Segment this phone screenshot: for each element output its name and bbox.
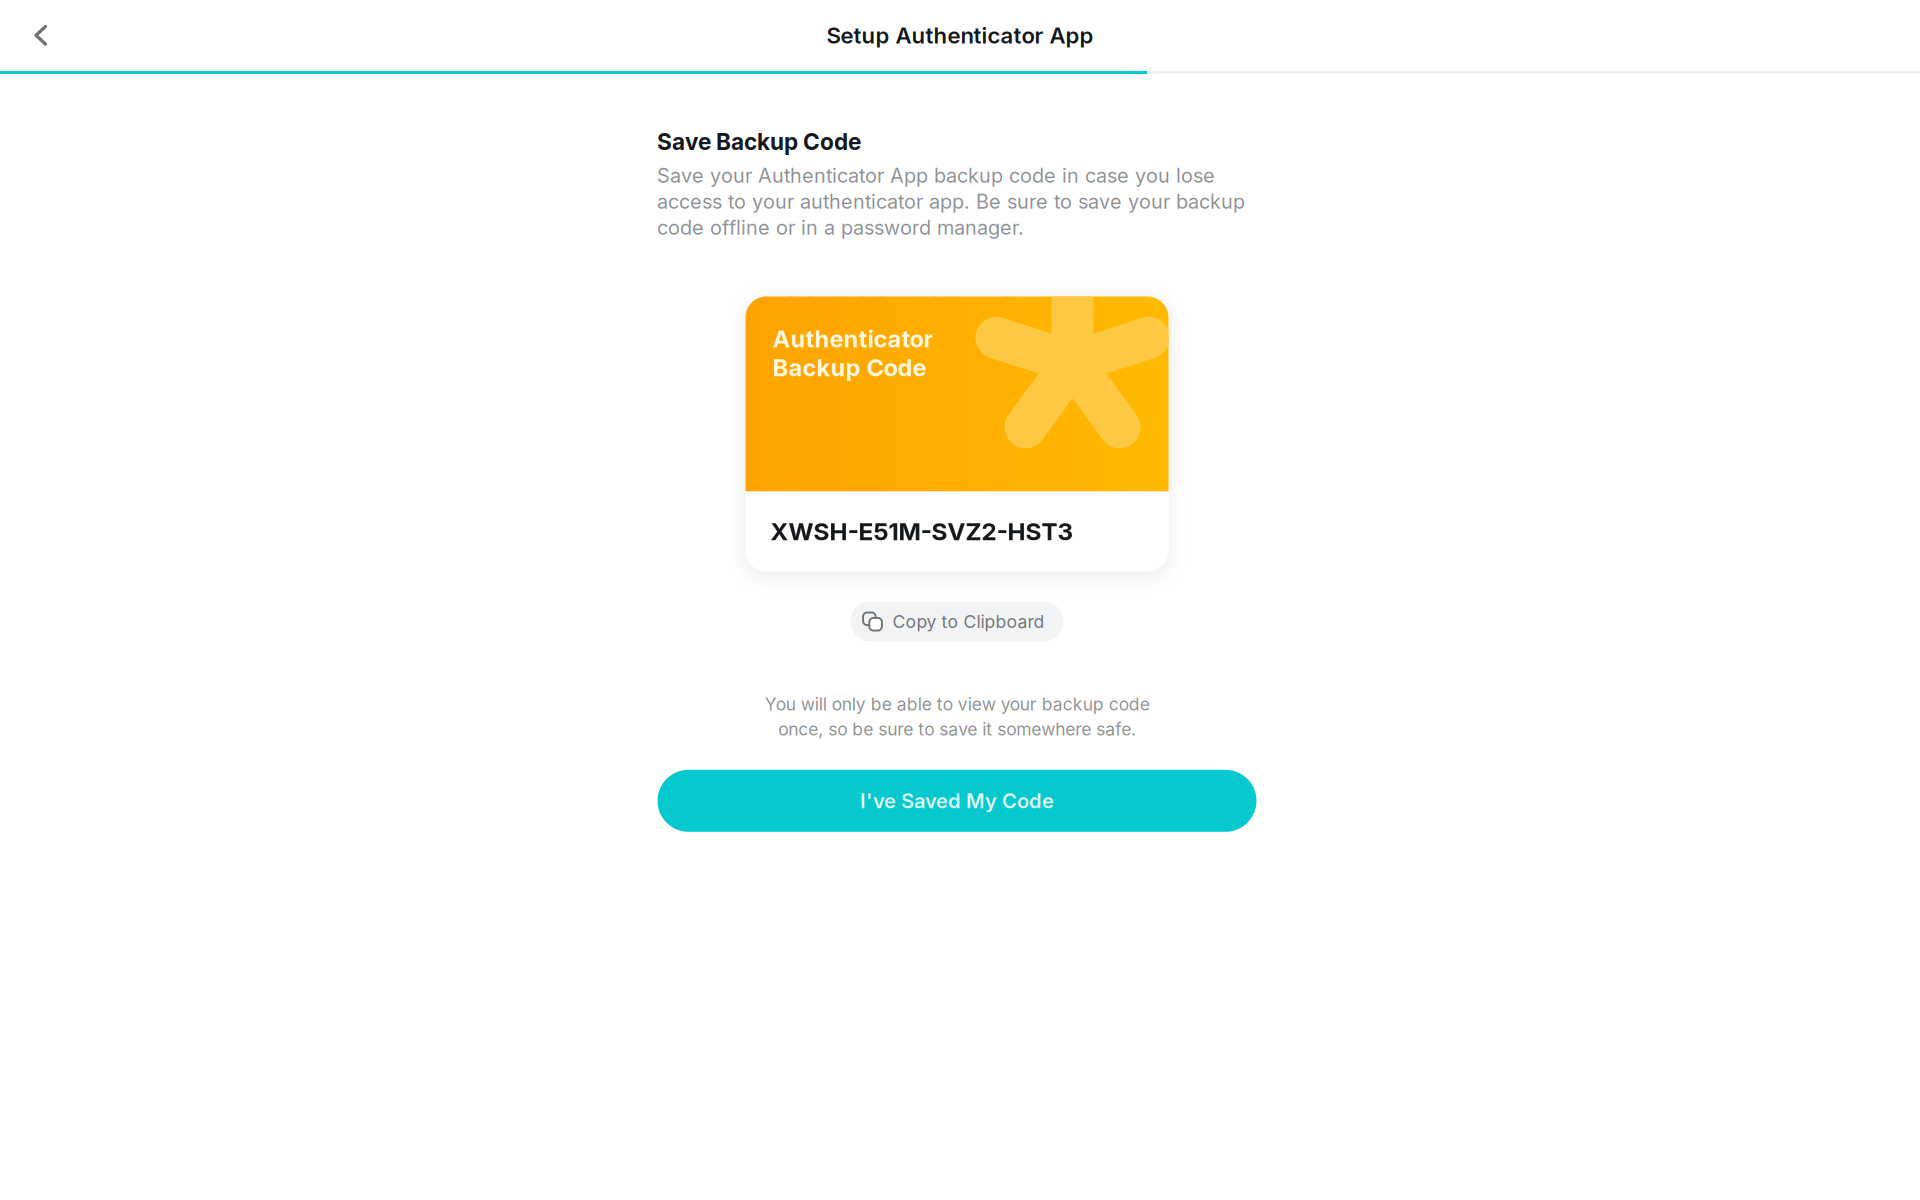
staticText: You will only be able to view your backu… — [764, 693, 1149, 740]
button[interactable]: I've Saved My Code — [657, 770, 1256, 832]
button[interactable]: Back — [0, 4, 68, 66]
staticText: Save your Authenticator App backup code … — [657, 163, 1245, 239]
staticText: XWSH-E51M-SVZ2-HST3 — [770, 517, 1073, 546]
staticText: I've Saved My Code — [860, 789, 1054, 813]
staticText: Copy to Clipboard — [892, 611, 1044, 632]
staticText: Save Backup Code — [657, 128, 861, 155]
staticText: Authenticator Backup Code — [772, 324, 932, 382]
button[interactable]: Copy to Clipboard — [850, 601, 1063, 641]
staticText: Setup Authenticator App — [826, 22, 1093, 49]
